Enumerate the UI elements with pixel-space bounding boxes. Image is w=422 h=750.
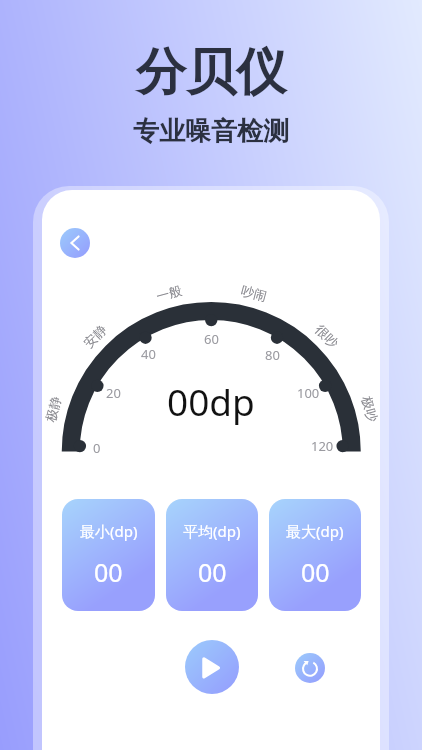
staticText: 00 — [198, 555, 227, 589]
button[interactable]: 最大(dp) — [269, 499, 361, 611]
staticText: 120 — [311, 437, 334, 455]
staticText: 00dp — [167, 376, 255, 426]
staticText: 安静 — [80, 321, 110, 351]
staticText: 专业噪音检测 — [133, 115, 289, 148]
staticText: 平均(dp) — [183, 521, 241, 541]
staticText: 极吵 — [359, 394, 381, 424]
staticText: 0 — [93, 439, 101, 457]
staticText: 00 — [94, 555, 123, 589]
button[interactable]: Back — [60, 228, 90, 258]
staticText: 极静 — [42, 394, 64, 424]
staticText: 分贝仪 — [136, 41, 286, 104]
staticText: 20 — [106, 384, 121, 402]
button[interactable]: Start measuring — [185, 640, 239, 694]
staticText: 00 — [301, 555, 330, 589]
staticText: 40 — [141, 345, 156, 363]
staticText: 100 — [297, 384, 320, 402]
staticText: 一般 — [154, 282, 184, 304]
staticText: 吵闹 — [239, 282, 269, 304]
staticText: 80 — [265, 346, 280, 364]
button[interactable]: 最小(dp) — [62, 499, 155, 611]
button[interactable]: Reset — [295, 653, 325, 683]
staticText: 最小(dp) — [80, 521, 138, 541]
button[interactable]: 平均(dp) — [166, 499, 258, 611]
staticText: 最大(dp) — [286, 521, 344, 541]
staticText: 60 — [204, 330, 219, 348]
staticText: 很吵 — [312, 321, 342, 351]
